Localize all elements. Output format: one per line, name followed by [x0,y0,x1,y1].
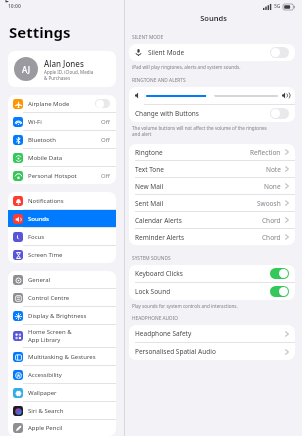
staticText: Chord [262,233,281,242]
staticText: HEADPHONE AUDIO [132,315,178,322]
staticText: Reminder Alerts [135,233,262,242]
staticText: Alan Jones [44,58,84,69]
staticText: Multitasking & Gestures [28,353,96,361]
button[interactable]: Wi-Fi [8,113,116,130]
button[interactable]: Toggle [95,99,110,108]
button[interactable]: Ringtone [129,144,295,160]
button[interactable]: Volume slider [129,87,295,104]
staticText: Wallpaper [28,389,57,397]
staticText: Headphone Safety [135,329,285,338]
staticText: Silent Mode [148,48,270,57]
staticText: Sent Mail [135,199,257,208]
staticText: Swoosh [257,199,281,208]
button[interactable]: Text Tone [129,161,295,177]
staticText: Chord [262,216,281,225]
staticText: AJ [22,64,30,75]
staticText: 10:00 [8,3,21,10]
staticText: Personal Hotspot [28,172,77,180]
staticText: None [264,182,281,191]
staticText: Siri & Search [28,407,64,415]
button[interactable]: Siri & Search [8,402,116,419]
button[interactable]: Keyboard Clicks [129,265,295,282]
staticText: Off [101,118,110,126]
staticText: The volume buttons will not affect the v… [132,125,267,137]
button[interactable]: Toggle [270,108,289,119]
staticText: Off [101,136,110,144]
button[interactable]: Notifications [8,192,116,209]
staticText: Note [266,165,281,174]
button[interactable]: Multitasking & Gestures [8,348,116,365]
button[interactable]: Toggle [270,286,289,297]
button[interactable]: Screen Time [8,246,116,263]
button[interactable]: Reminder Alerts [129,229,295,245]
button[interactable]: Volume slider [206,92,215,101]
staticText: Apple ID, iCloud, Media [44,69,94,75]
staticText: Lock Sound [135,287,270,296]
staticText: iPad will play ringtones, alerts and sys… [132,64,241,70]
button[interactable]: Sent Mail [129,195,295,211]
staticText: Wi-Fi [28,118,42,126]
staticText: General [28,276,51,284]
staticText: Sounds [125,13,302,23]
staticText: Personalised Spatial Audio [135,347,285,356]
staticText: App Library [28,336,61,344]
staticText: Screen Time [28,251,63,259]
staticText: Airplane Mode [28,100,70,108]
staticText: RINGTONE AND ALERTS [132,77,186,84]
button[interactable]: Airplane Mode [8,95,116,112]
button[interactable]: Wallpaper [8,384,116,401]
button[interactable]: Change with Buttons [129,105,295,122]
button[interactable]: Personalised Spatial Audio [129,343,295,360]
button[interactable]: Control Centre [8,289,116,306]
staticText: Settings [9,22,71,42]
staticText: New Mail [135,182,264,191]
staticText: Text Tone [135,165,266,174]
button[interactable]: Bluetooth [8,131,116,148]
staticText: Sounds [28,215,49,223]
staticText: Notifications [28,197,64,205]
staticText: Calendar Alerts [135,216,262,225]
button[interactable]: Toggle [270,268,289,279]
button[interactable]: Calendar Alerts [129,212,295,228]
staticText: Accessibility [28,371,62,379]
staticText: Play sounds for system controls and inte… [132,303,238,309]
staticText: SYSTEM SOUNDS [132,255,171,262]
staticText: Change with Buttons [135,109,270,118]
button[interactable]: Accessibility [8,366,116,383]
button[interactable]: Silent Mode [129,44,295,61]
button[interactable]: Mobile Data [8,149,116,166]
button[interactable]: New Mail [129,178,295,194]
staticText: Home Screen & [28,328,72,336]
staticText: Keyboard Clicks [135,269,270,278]
staticText: Focus [28,233,45,241]
staticText: Control Centre [28,294,70,302]
staticText: Apple Pencil [28,424,63,432]
button[interactable]: Display & Brightness [8,307,116,324]
button[interactable]: Apple Pencil [8,420,116,436]
button[interactable]: Home Screen & [8,325,116,347]
button[interactable]: Focus [8,228,116,245]
staticText: Reflection [250,148,281,157]
staticText: & Purchases [44,75,71,81]
button[interactable]: Sounds [8,210,116,227]
staticText: SILENT MODE [132,34,164,41]
staticText: Bluetooth [28,136,56,144]
button[interactable]: Lock Sound [129,283,295,300]
staticText: Ringtone [135,148,250,157]
button[interactable]: Personal Hotspot [8,167,116,184]
staticText: Mobile Data [28,154,63,162]
staticText: Off [101,172,110,180]
button[interactable]: AJ [8,51,116,87]
staticText: Display & Brightness [28,312,87,320]
button[interactable]: Toggle [270,47,289,58]
staticText: 5G [274,3,281,10]
button[interactable]: General [8,271,116,288]
button[interactable]: Headphone Safety [129,325,295,342]
